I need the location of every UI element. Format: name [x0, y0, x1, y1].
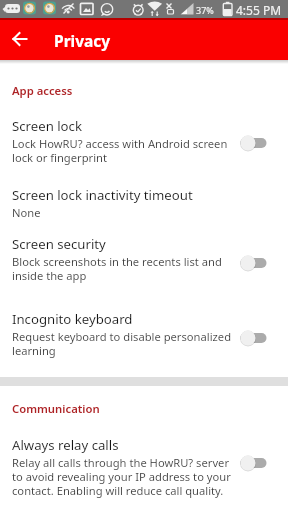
staticText: 4:55 PM [236, 2, 282, 18]
staticText: Relay all calls through the HowRU? serve… [12, 455, 242, 498]
button[interactable] [8, 27, 32, 51]
button[interactable]: Always relay calls [0, 432, 288, 511]
button[interactable]: Screen lock inactivity timeout [0, 182, 288, 228]
staticText: Screen security [12, 235, 106, 253]
staticText: Request keyboard to disable personalized… [12, 329, 242, 358]
button[interactable]: Incognito keyboard [0, 306, 288, 368]
button[interactable] [240, 135, 268, 151]
staticText: Block screenshots in the recents list an… [12, 254, 242, 283]
button[interactable] [240, 455, 268, 471]
button[interactable] [240, 330, 268, 346]
staticText: Always relay calls [12, 436, 119, 454]
staticText: Incognito keyboard [12, 310, 133, 328]
staticText: Screen lock [12, 117, 82, 135]
staticText: None [12, 205, 242, 220]
staticText: 37% [196, 4, 214, 16]
button[interactable] [240, 255, 268, 271]
button[interactable]: Screen lock [0, 113, 288, 179]
staticText: Communication [12, 401, 100, 416]
staticText: Privacy [54, 30, 111, 51]
staticText: Lock HowRU? access with Android screen l… [12, 136, 242, 165]
staticText: Screen lock inactivity timeout [12, 186, 193, 204]
staticText: App access [12, 83, 73, 98]
button[interactable]: Screen security [0, 231, 288, 287]
